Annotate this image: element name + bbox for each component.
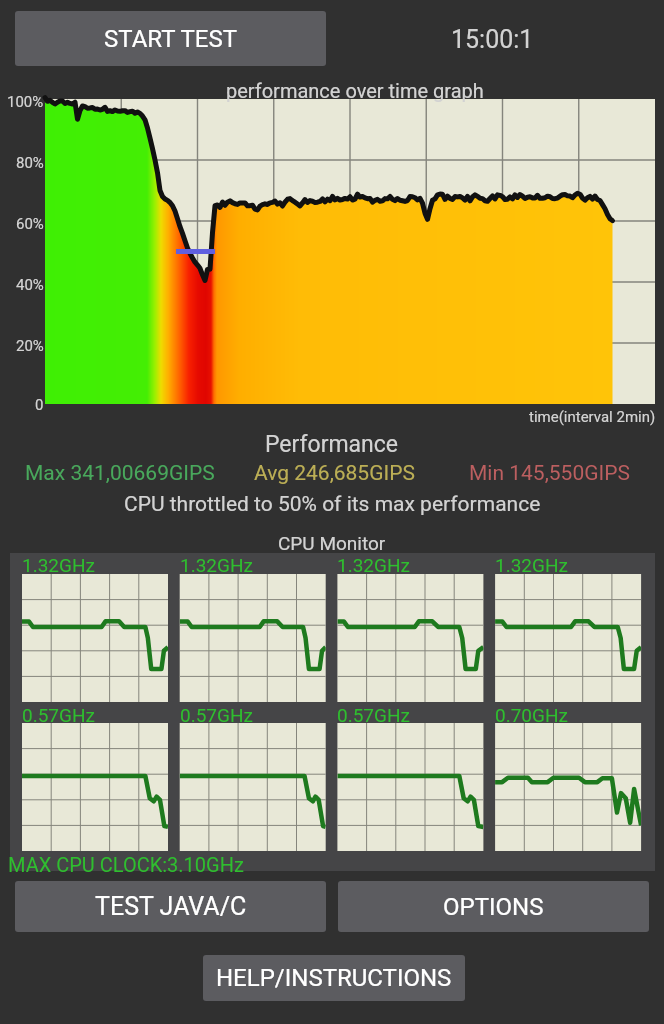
button[interactable]: Help [203,955,465,1001]
staticText: 0.70GHz [495,704,568,726]
button[interactable]: Start test [15,11,326,66]
staticText: 40% [16,276,44,294]
staticText: 15:00:1 [451,25,534,54]
staticText: 1.32GHz [495,554,568,576]
staticText: HELP/INSTRUCTIONS [216,964,452,992]
staticText: Performance [265,431,399,458]
staticText: TEST JAVA/C [95,892,247,921]
button[interactable]: Options [338,881,649,932]
staticText: 20% [16,337,44,355]
staticText: 0.57GHz [22,704,95,726]
staticText: OPTIONS [443,893,544,921]
staticText: 1.32GHz [180,554,253,576]
staticText: 0 [35,396,44,414]
staticText: 0.57GHz [337,704,410,726]
staticText: 0.57GHz [180,704,253,726]
staticText: performance over time graph [226,79,484,102]
staticText: Avg 246,685GIPS [254,461,415,486]
staticText: 80% [16,154,44,172]
staticText: 60% [16,215,44,233]
staticText: time(interval 2min) [529,408,656,426]
staticText: MAX CPU CLOCK:3.10GHz [8,853,244,876]
staticText: 1.32GHz [337,554,410,576]
staticText: Max 341,00669GIPS [25,461,215,486]
staticText: 100% [7,93,44,111]
staticText: 1.32GHz [22,554,95,576]
staticText: Min 145,550GIPS [469,461,630,486]
button[interactable]: Test Java C [15,881,326,932]
staticText: CPU throttled to 50% of its max performa… [124,492,541,517]
staticText: START TEST [104,25,238,53]
staticText: CPU Monitor [278,532,386,554]
